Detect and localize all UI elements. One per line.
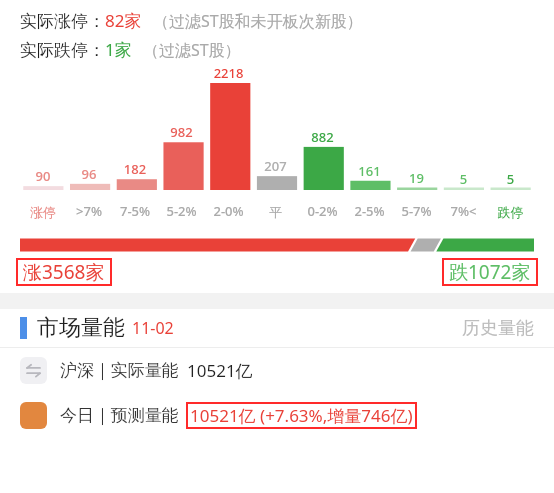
staticText: 207 xyxy=(252,157,299,175)
staticText: 实际涨停： xyxy=(20,11,105,32)
staticText: 7-5% xyxy=(112,202,158,220)
staticText: 982 xyxy=(158,123,205,141)
staticText: （过滤ST股和未开板次新股） xyxy=(153,10,363,32)
staticText: 涨停 xyxy=(20,204,66,220)
staticText: （过滤ST股） xyxy=(143,39,241,61)
button[interactable]: 跌1072家 xyxy=(442,258,538,286)
other: 沪深切换 xyxy=(20,357,47,384)
staticText: 今日｜预测量能 xyxy=(60,405,179,426)
staticText: 10521亿 xyxy=(187,359,253,382)
button[interactable]: 涨3568家 xyxy=(16,258,112,286)
staticText: 历史量能 xyxy=(462,317,534,340)
staticText: 涨3568家 xyxy=(23,259,105,285)
staticText: 2218 xyxy=(205,64,252,82)
staticText: 跌1072家 xyxy=(449,259,531,285)
staticText: 161 xyxy=(346,162,393,180)
staticText: 5 xyxy=(440,170,487,188)
staticText: 2-0% xyxy=(205,202,252,220)
staticText: 82家 xyxy=(105,9,142,32)
staticText: 沪深｜实际量能 xyxy=(60,360,179,381)
staticText: 90 xyxy=(20,167,66,185)
staticText: 1家 xyxy=(105,38,132,61)
staticText: 5 xyxy=(487,170,534,188)
staticText: 平 xyxy=(252,204,299,220)
staticText: 11-02 xyxy=(132,317,174,339)
staticText: >7% xyxy=(66,202,112,220)
staticText: 19 xyxy=(393,169,440,187)
staticText: 市场量能 xyxy=(37,314,125,342)
staticText: 5-7% xyxy=(393,202,440,220)
button[interactable]: 沪深切换 xyxy=(0,348,554,393)
button[interactable]: 今日｜预测量能 xyxy=(0,393,554,438)
staticText: 182 xyxy=(112,160,158,178)
staticText: 96 xyxy=(66,165,112,183)
staticText: 跌停 xyxy=(487,204,534,220)
staticText: 882 xyxy=(299,128,346,146)
button[interactable]: 市场量能 xyxy=(0,309,554,347)
staticText: 7%< xyxy=(440,202,487,220)
staticText: 实际跌停： xyxy=(20,40,105,61)
staticText: 10521亿 (+7.63%,增量746亿) xyxy=(190,404,413,427)
staticText: 0-2% xyxy=(299,202,346,220)
staticText: 2-5% xyxy=(346,202,393,220)
staticText: 5-2% xyxy=(158,202,205,220)
